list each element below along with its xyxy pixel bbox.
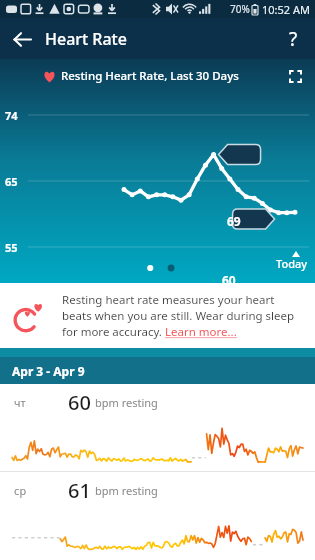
staticText: Today	[276, 256, 308, 271]
staticText: 55	[5, 240, 18, 255]
staticText: for more accuracy.	[62, 324, 165, 340]
button[interactable]: ср	[0, 472, 315, 559]
staticText: Apr 3 - Apr 9	[12, 363, 85, 379]
staticText: 60	[68, 389, 91, 416]
staticText: Heart Rate	[45, 28, 127, 50]
staticText: beats when you are still. Wear during sl…	[62, 308, 295, 324]
staticText: Resting Heart Rate, Last 30 Days	[61, 68, 239, 84]
staticText: bpm resting	[95, 395, 158, 410]
staticText: 61	[68, 477, 91, 504]
button[interactable]: чт	[0, 384, 315, 471]
staticText: bpm resting	[95, 483, 158, 498]
button[interactable]: Apr 3 - Apr 9	[0, 357, 315, 384]
button[interactable]: Resting heart rate measures your heart	[0, 283, 315, 348]
button[interactable]: Learn more...	[165, 324, 237, 340]
staticText: чт	[14, 395, 68, 410]
staticText: 65	[5, 174, 18, 189]
staticText: 70%	[230, 2, 250, 16]
staticText: Resting heart rate measures your heart	[62, 292, 275, 308]
staticText: 69	[227, 213, 241, 229]
staticText: ср	[14, 483, 68, 498]
button[interactable]: Back	[5, 22, 39, 56]
staticText: ?	[289, 26, 298, 52]
staticText: 60	[222, 272, 236, 288]
staticText: 74	[5, 108, 18, 123]
staticText: 10:52 AM	[262, 2, 310, 17]
button[interactable]: Expand to fullscreen	[282, 63, 308, 89]
button[interactable]: Help	[276, 22, 310, 56]
